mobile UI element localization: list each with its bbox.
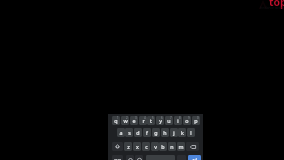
staticText: q	[114, 117, 118, 124]
button[interactable]: p	[192, 116, 200, 125]
staticText: v	[154, 143, 157, 150]
button[interactable]: a	[117, 128, 125, 137]
staticText: 5	[152, 116, 154, 120]
staticText: top	[269, 0, 284, 9]
staticText: b	[161, 143, 165, 150]
button[interactable]: n	[168, 142, 176, 151]
staticText: t	[150, 117, 152, 124]
staticText: w	[123, 117, 128, 124]
staticText: 0	[197, 116, 199, 120]
staticText: l	[190, 129, 192, 136]
button[interactable]: r	[139, 116, 147, 125]
staticText: f	[146, 129, 148, 136]
staticText: m	[178, 143, 184, 150]
button[interactable]: s	[125, 128, 133, 137]
button[interactable]: h	[161, 128, 169, 137]
button[interactable]: g	[152, 128, 160, 137]
staticText: p	[194, 117, 198, 124]
button[interactable]: i	[174, 116, 182, 125]
staticText: 8	[179, 116, 181, 120]
staticText: z	[127, 143, 130, 150]
button[interactable]: o	[183, 116, 191, 125]
staticText: 9	[188, 116, 190, 120]
button[interactable]: t	[147, 116, 155, 125]
button[interactable]: v	[151, 142, 159, 151]
staticText: j	[173, 129, 175, 136]
button[interactable]: c	[142, 142, 150, 151]
button[interactable]: d	[134, 128, 142, 137]
staticText: r	[142, 117, 145, 124]
staticText: y	[159, 117, 162, 124]
staticText: h	[163, 129, 167, 136]
button[interactable]: Backspace	[186, 142, 199, 151]
staticText: 4	[144, 116, 146, 120]
button[interactable]: f	[143, 128, 151, 137]
staticText: e	[132, 117, 136, 124]
staticText: g	[154, 129, 158, 136]
button[interactable]: m	[177, 142, 185, 151]
button[interactable]: Emoji	[126, 155, 134, 160]
staticText: d	[136, 129, 140, 136]
button[interactable]: Symbols	[112, 155, 123, 160]
staticText: freelance talent	[260, 6, 284, 10]
staticText: u	[167, 117, 171, 124]
button[interactable]: Shift	[112, 142, 123, 151]
staticText: n	[170, 143, 174, 150]
staticText: s	[128, 129, 131, 136]
staticText: 6	[161, 116, 163, 120]
button[interactable]: j	[170, 128, 178, 137]
staticText: ?123	[114, 158, 122, 160]
staticText: 3	[135, 116, 137, 120]
button[interactable]: e	[130, 116, 138, 125]
button[interactable]: Language	[135, 155, 143, 160]
button[interactable]: u	[165, 116, 173, 125]
button[interactable]: b	[159, 142, 167, 151]
staticText: 7	[170, 116, 172, 120]
button[interactable]: l	[187, 128, 195, 137]
button[interactable]: w	[121, 116, 129, 125]
staticText: a	[119, 129, 123, 136]
staticText: i	[177, 117, 179, 124]
staticText: o	[185, 117, 189, 124]
staticText: k	[181, 129, 184, 136]
staticText: x	[136, 143, 139, 150]
staticText: c	[145, 143, 148, 150]
staticText: 2	[126, 116, 128, 120]
staticText: 1	[117, 116, 119, 120]
button[interactable]: Enter	[188, 155, 201, 160]
button[interactable]: x	[133, 142, 141, 151]
button[interactable]: z	[124, 142, 132, 151]
button[interactable]: q	[112, 116, 120, 125]
button[interactable]: k	[178, 128, 186, 137]
button[interactable]: y	[156, 116, 164, 125]
